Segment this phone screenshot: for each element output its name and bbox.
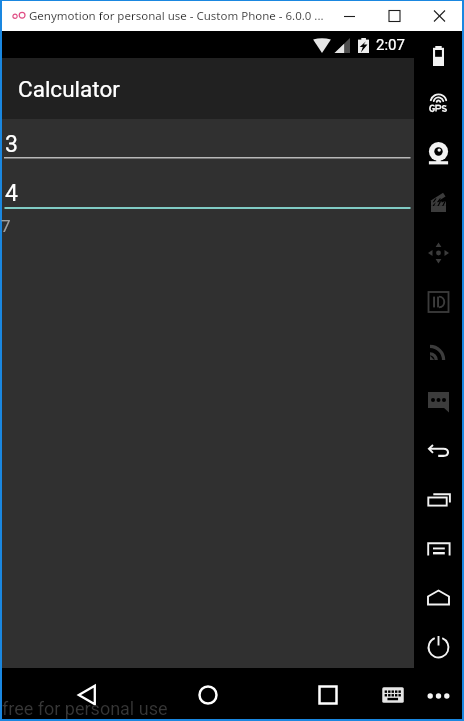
button[interactable]: Battery: [414, 36, 462, 76]
button[interactable]: Camera: [414, 134, 462, 174]
button[interactable]: First number: [2, 125, 414, 159]
button[interactable]: Close: [417, 1, 462, 31]
staticText: 4: [5, 180, 18, 207]
button[interactable]: Identifiers: [414, 282, 462, 322]
button[interactable]: Phone: [414, 381, 462, 421]
staticText: 2:07: [376, 36, 405, 54]
button[interactable]: Keyboard: [381, 668, 405, 719]
button[interactable]: Home: [414, 578, 462, 618]
staticText: Genymotion for personal use - Custom Pho…: [29, 8, 324, 24]
button[interactable]: Power: [414, 627, 462, 667]
button[interactable]: Recent apps: [316, 668, 340, 719]
staticText: Calculator: [18, 76, 120, 102]
button[interactable]: Maximize: [372, 1, 417, 31]
staticText: free for personal use: [2, 698, 168, 719]
button[interactable]: Back: [75, 668, 99, 719]
button[interactable]: Second number: [2, 175, 414, 209]
staticText: 7: [1, 216, 11, 236]
button[interactable]: Screen cast: [414, 529, 462, 569]
staticText: 3: [5, 131, 18, 158]
button[interactable]: More: [414, 676, 462, 716]
button[interactable]: GPS: [414, 85, 462, 125]
button[interactable]: Multi window: [414, 479, 462, 519]
button[interactable]: Network: [414, 331, 462, 371]
button[interactable]: Virtual sensors: [414, 233, 462, 273]
button[interactable]: Back: [414, 430, 462, 470]
button[interactable]: Home: [196, 668, 220, 719]
button[interactable]: Minimize: [327, 1, 372, 31]
button[interactable]: Screen recorder: [414, 183, 462, 223]
